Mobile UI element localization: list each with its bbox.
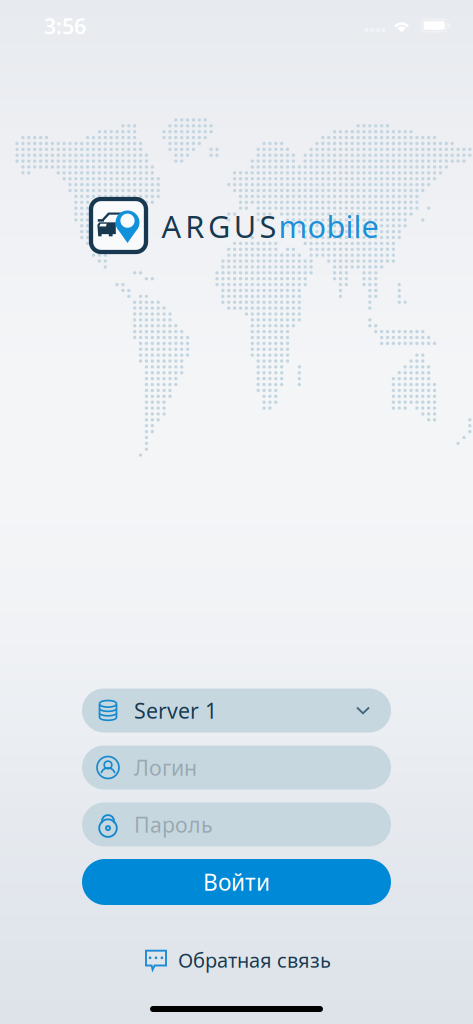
staticText: Server 1 bbox=[134, 696, 217, 725]
staticText: Логин bbox=[134, 753, 197, 782]
staticText: mobile bbox=[279, 206, 379, 246]
staticText: 3:56 bbox=[44, 12, 86, 40]
staticText: R bbox=[185, 206, 204, 246]
staticText: A bbox=[161, 206, 181, 246]
button[interactable]: Обратная связь bbox=[137, 941, 339, 979]
staticText: Пароль bbox=[134, 810, 213, 839]
staticText: U bbox=[234, 206, 256, 246]
staticText: Обратная связь bbox=[178, 947, 331, 973]
staticText: S bbox=[260, 206, 277, 246]
button[interactable]: Логин bbox=[82, 745, 391, 789]
button[interactable]: Войти bbox=[82, 859, 391, 905]
staticText: G bbox=[208, 206, 230, 246]
staticText: Войти bbox=[203, 867, 270, 897]
button[interactable]: Пароль bbox=[82, 802, 391, 846]
button[interactable]: Server 1 bbox=[82, 688, 391, 732]
